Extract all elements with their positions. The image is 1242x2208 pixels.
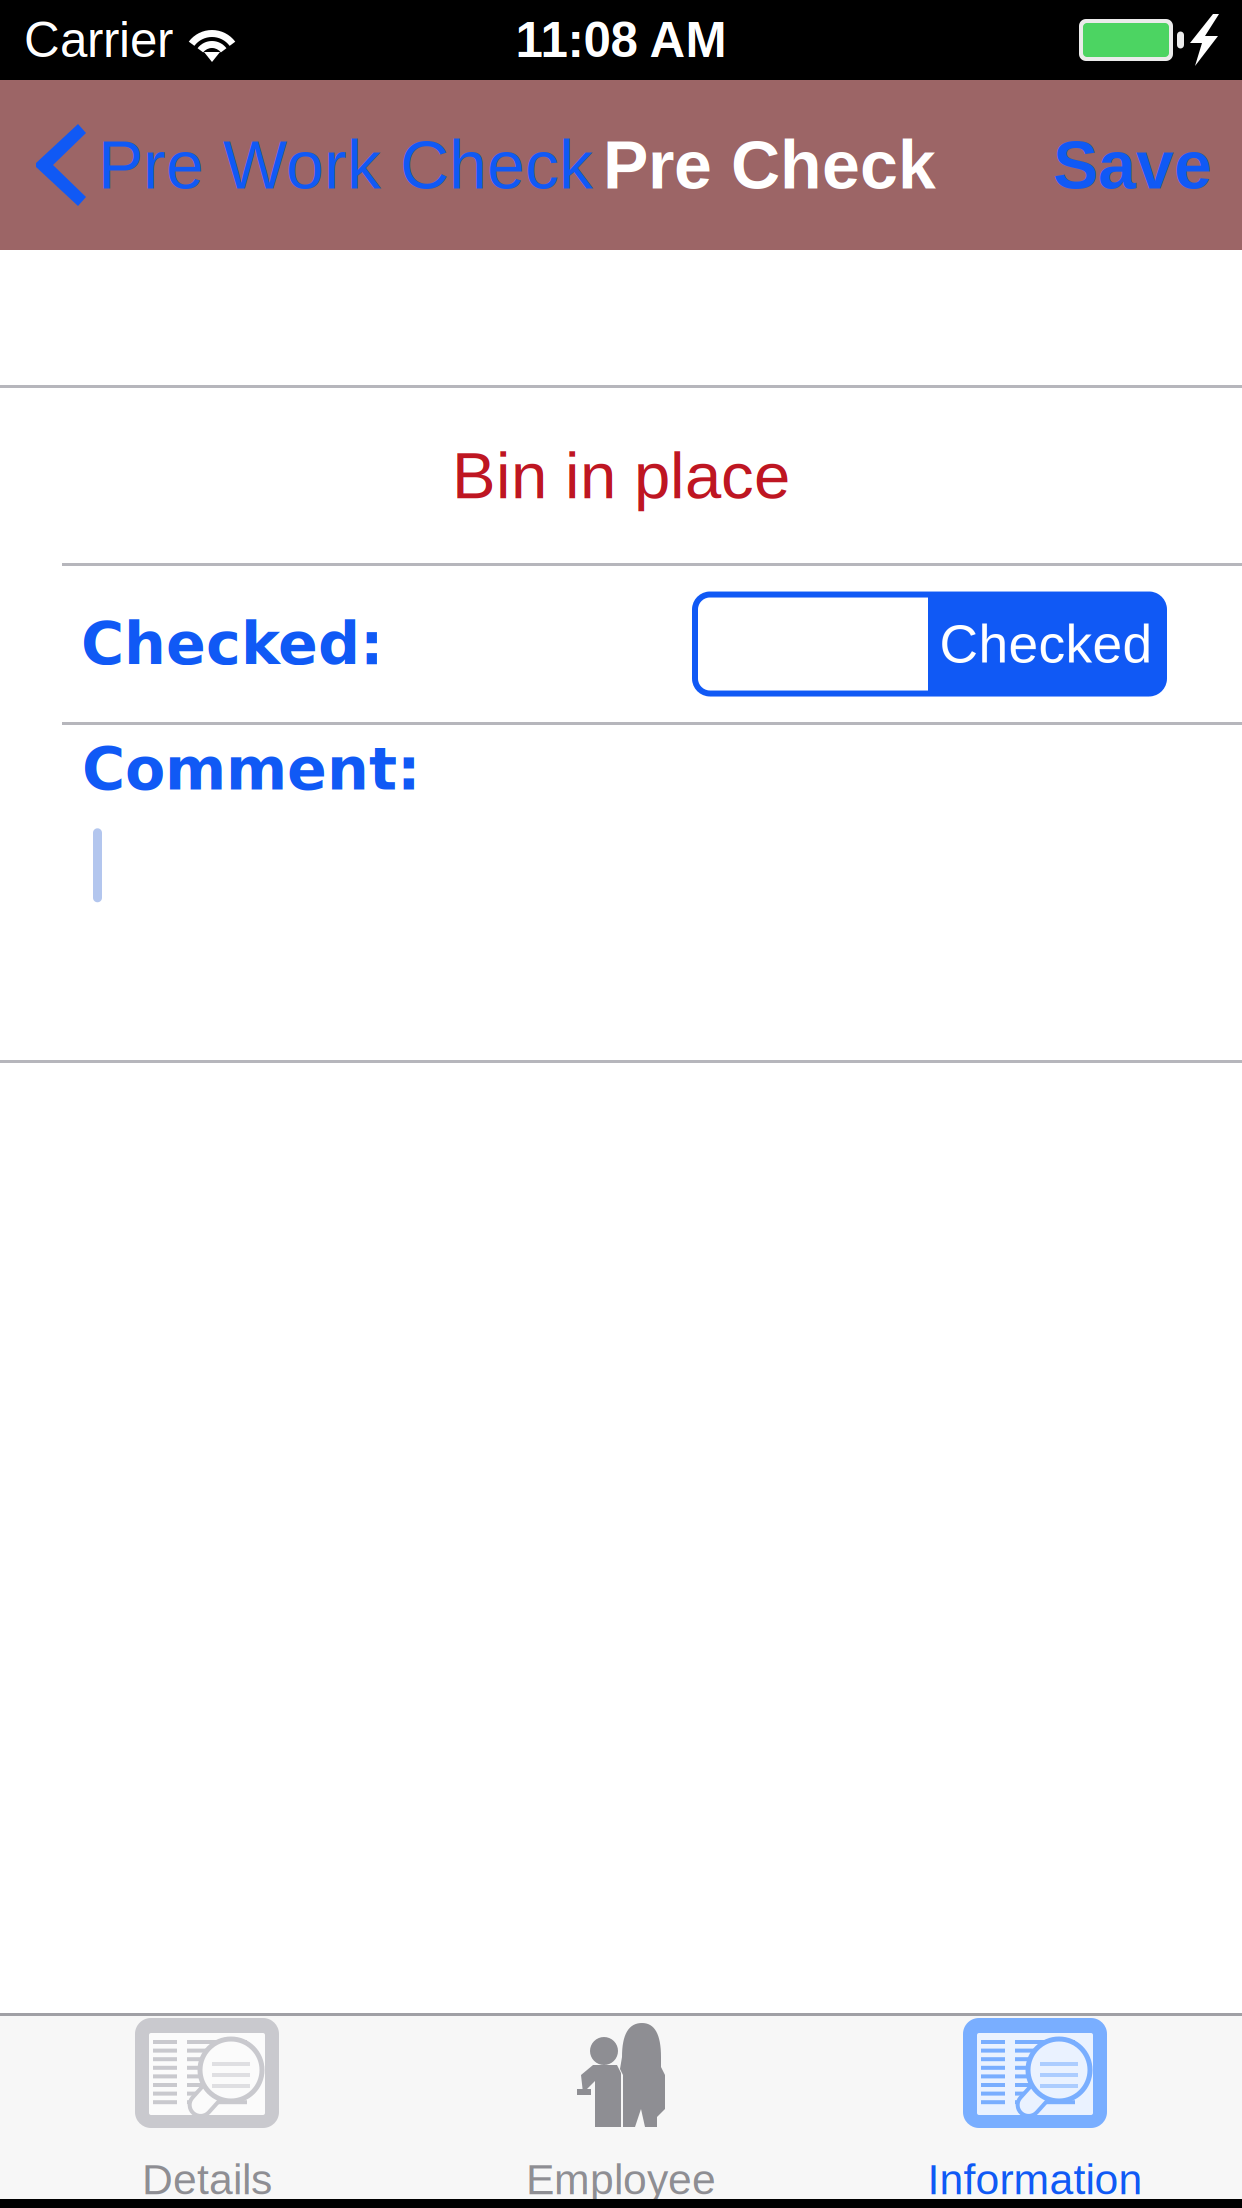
staticText: Checked: (81, 610, 383, 678)
staticText: Employee (526, 2156, 716, 2203)
button[interactable]: Checked (695, 594, 1164, 693)
staticText: Save (1053, 127, 1212, 203)
staticText: 11:08 AM (515, 12, 726, 67)
button[interactable]: Employee (414, 2016, 828, 2199)
button[interactable]: Information (828, 2016, 1242, 2199)
button[interactable]: Save (1053, 103, 1242, 227)
staticText: Pre Check (603, 127, 936, 203)
button[interactable]: Details (0, 2016, 414, 2199)
staticText: Information (927, 2156, 1142, 2203)
staticText: Details (142, 2156, 272, 2203)
button[interactable]: Pre Work Check (0, 100, 593, 230)
staticText: Pre Work Check (98, 127, 593, 203)
staticText: Comment: (82, 735, 420, 803)
staticText: Bin in place (452, 439, 790, 512)
staticText: Carrier (24, 12, 173, 67)
staticText: Checked (939, 614, 1152, 674)
